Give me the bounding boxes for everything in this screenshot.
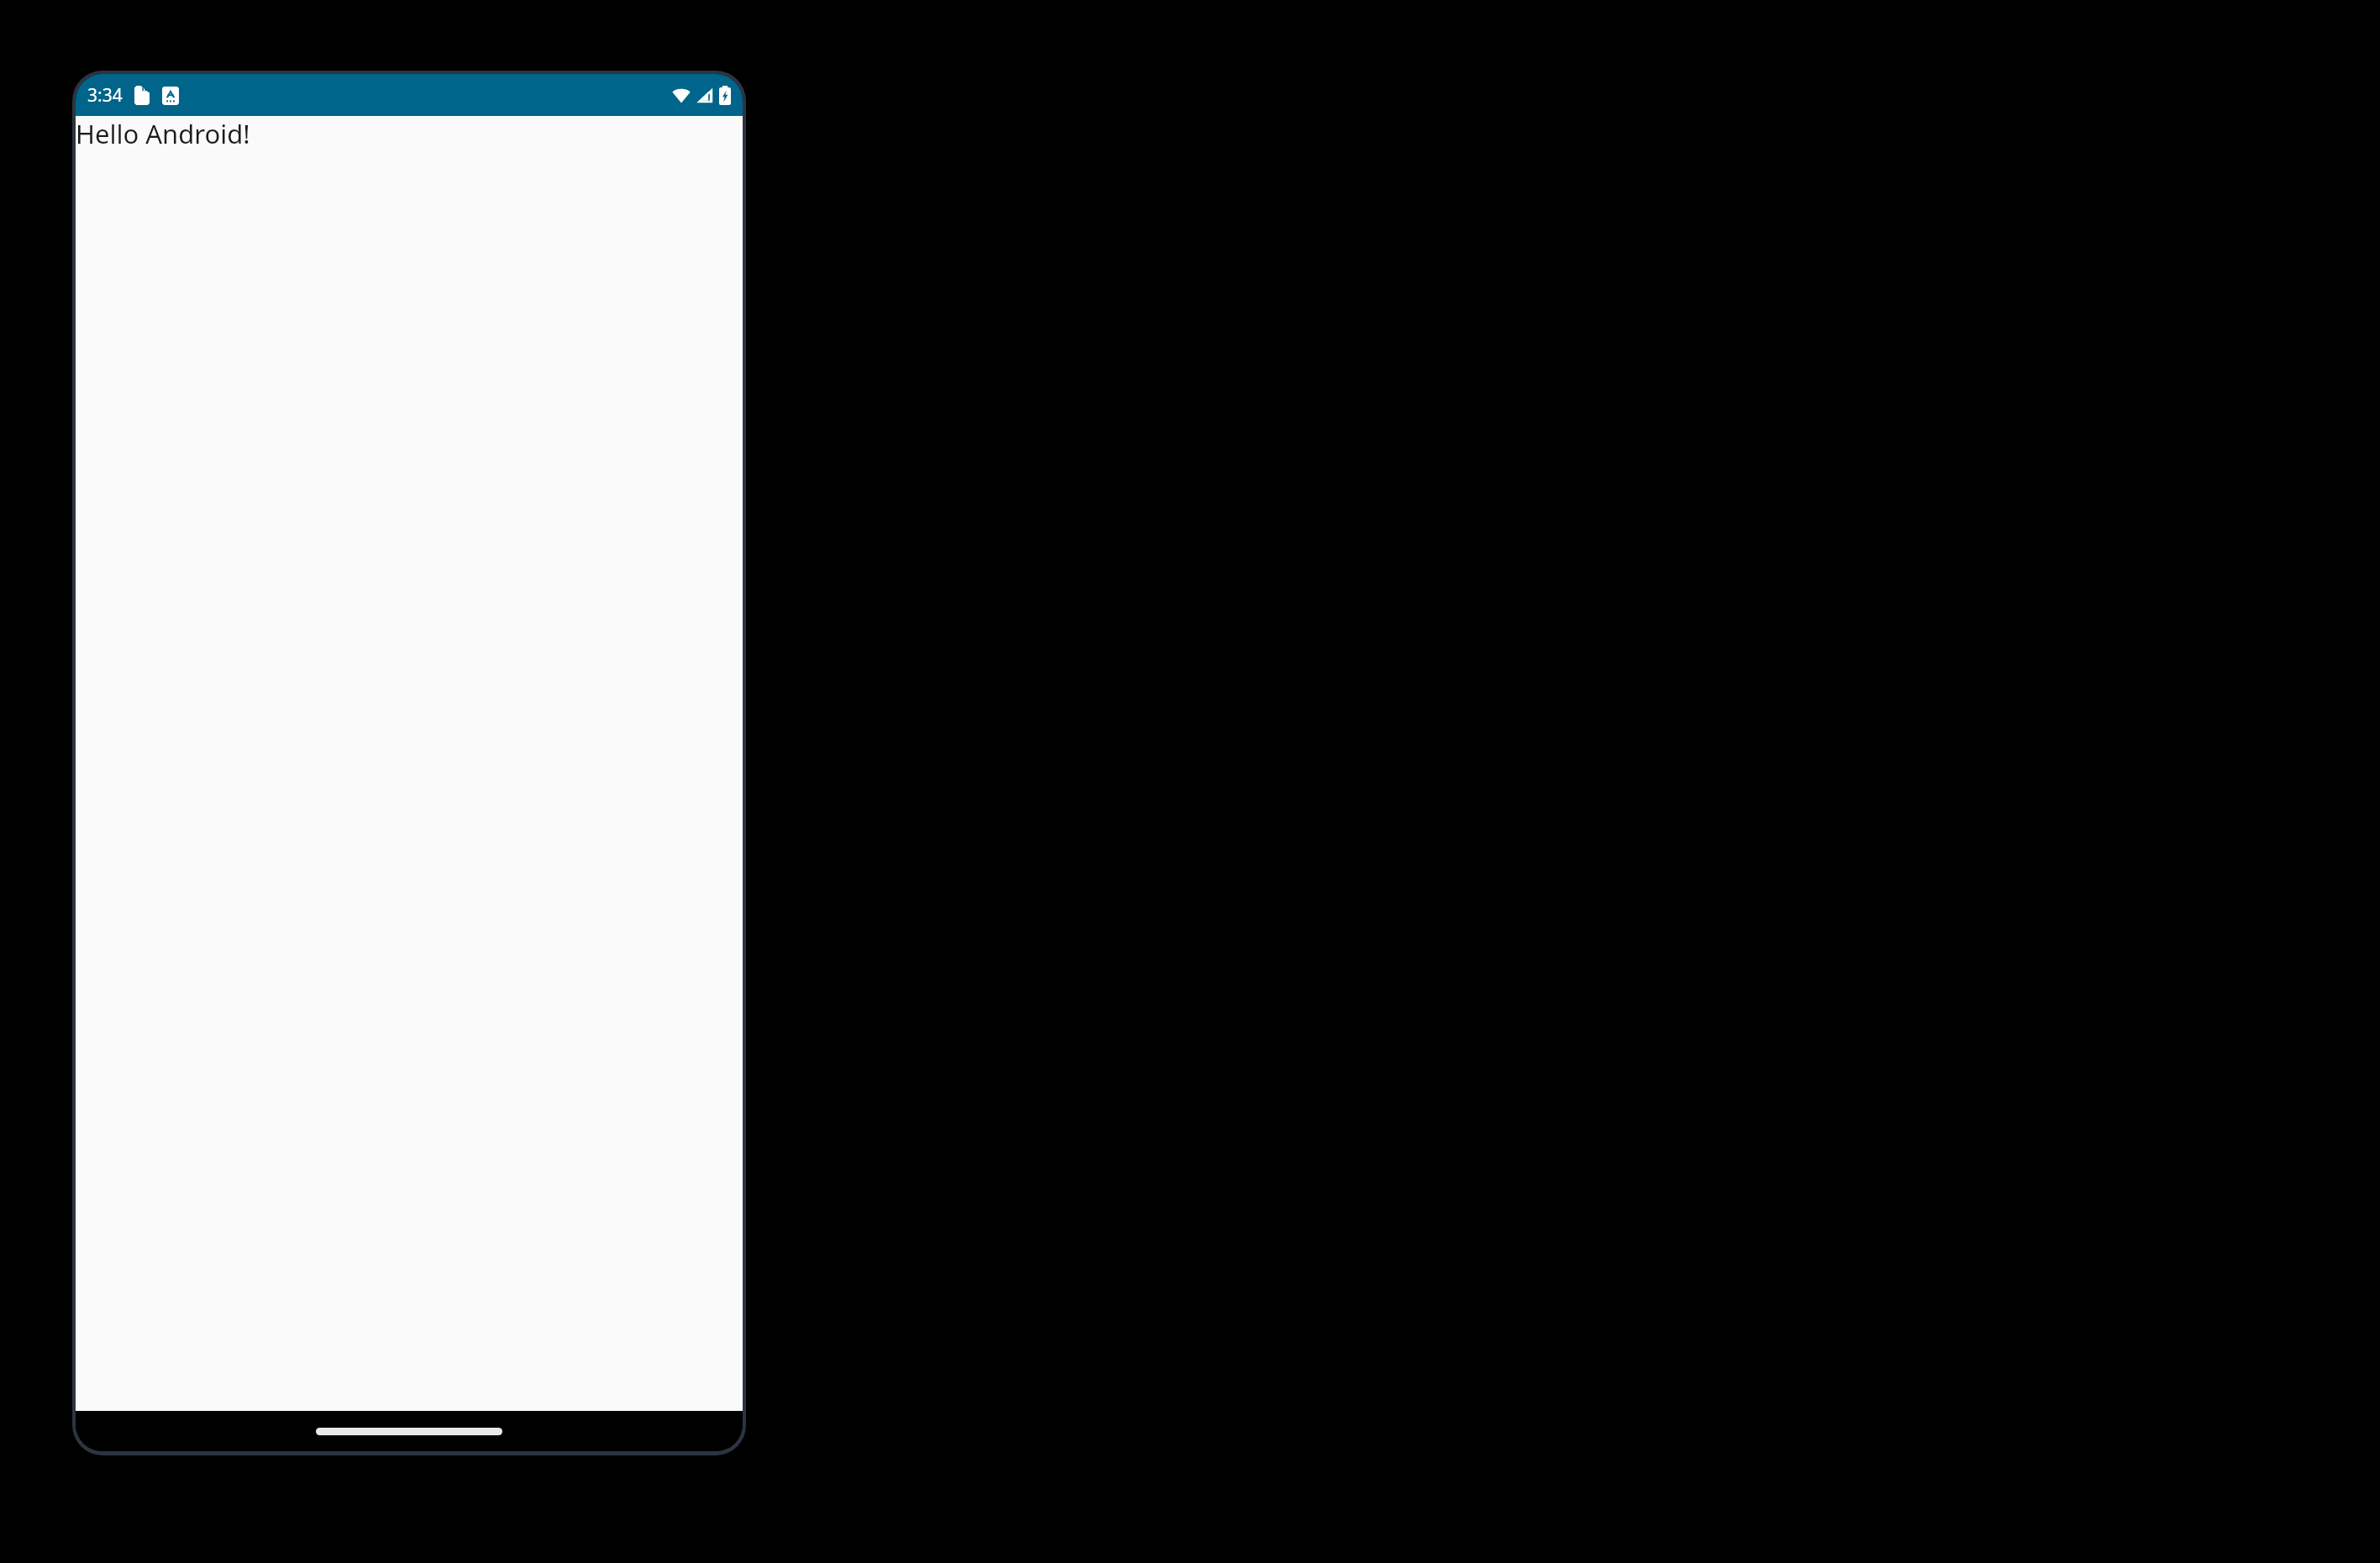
other: Wi-Fi	[672, 87, 691, 103]
other: Signal	[696, 87, 713, 104]
other: Alarm badge	[162, 87, 179, 105]
staticText: 3:34	[87, 83, 123, 108]
button[interactable]: Home	[316, 1428, 502, 1435]
staticText: Hello Android!	[76, 116, 250, 151]
other: Battery charging	[719, 86, 731, 105]
other: SD card	[134, 86, 150, 105]
